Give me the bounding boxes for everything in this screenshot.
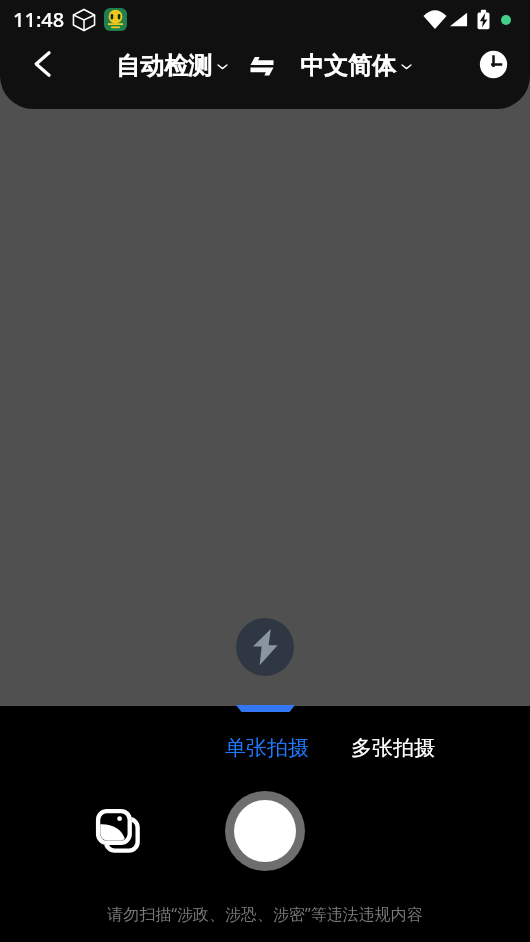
- button[interactable]: Take photo: [225, 791, 305, 871]
- button[interactable]: History: [479, 50, 508, 79]
- staticText: 自动检测: [116, 51, 212, 81]
- staticText: 中文简体: [300, 51, 396, 81]
- staticText: 多张拍摄: [351, 735, 435, 761]
- staticText: 11:48: [13, 6, 65, 33]
- button[interactable]: 中文简体: [296, 46, 417, 86]
- button[interactable]: Back: [28, 47, 62, 81]
- button[interactable]: 多张拍摄: [345, 731, 441, 765]
- button[interactable]: Swap languages: [250, 54, 274, 78]
- button[interactable]: 单张拍摄: [219, 731, 315, 765]
- staticText: 单张拍摄: [225, 735, 309, 761]
- staticText: 请勿扫描“涉政、涉恐、涉密”等违法违规内容: [0, 903, 530, 925]
- button[interactable]: 自动检测: [112, 46, 233, 86]
- button[interactable]: Flash: [236, 618, 294, 676]
- button[interactable]: Gallery: [93, 806, 144, 857]
